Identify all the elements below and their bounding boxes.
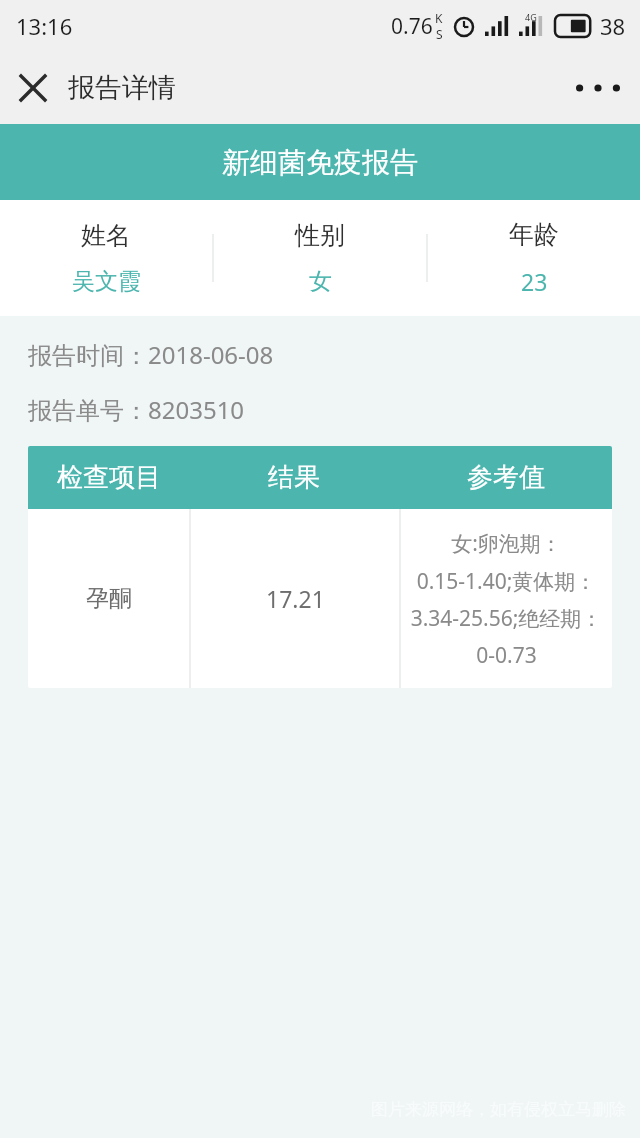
button[interactable]: Close <box>0 59 66 117</box>
staticText: 吴文霞 <box>72 267 141 296</box>
staticText: 17.21 <box>266 583 325 614</box>
staticText: 0.76 <box>391 12 433 41</box>
staticText: 性别 <box>295 220 345 251</box>
staticText: 13:16 <box>16 11 73 41</box>
staticText: 新细菌免疫报告 <box>222 145 418 180</box>
staticText: 检查项目 <box>57 461 161 494</box>
staticText: 38 <box>600 11 626 41</box>
staticText: 图片来源网络，如有侵权立马删除 <box>371 1099 626 1120</box>
button[interactable]: More options <box>556 63 640 113</box>
staticText: 女:卵泡期：0.15-1.40;黄体期：3.34-25.56;绝经期： 0-0.… <box>407 529 606 669</box>
staticText: 23 <box>521 266 548 297</box>
staticText: 年龄 <box>509 219 559 250</box>
staticText: 结果 <box>268 461 320 494</box>
staticText: K <box>435 10 443 26</box>
staticText: 4G <box>525 11 537 23</box>
staticText: 孕酮 <box>86 584 132 613</box>
staticText: 女 <box>309 267 332 296</box>
staticText: 报告详情 <box>68 71 176 105</box>
staticText: 报告单号：8203510 <box>28 393 245 426</box>
staticText: 报告时间：2018-06-08 <box>28 338 274 371</box>
staticText: 参考值 <box>467 461 545 494</box>
staticText: S <box>436 26 443 42</box>
staticText: 姓名 <box>81 220 131 251</box>
